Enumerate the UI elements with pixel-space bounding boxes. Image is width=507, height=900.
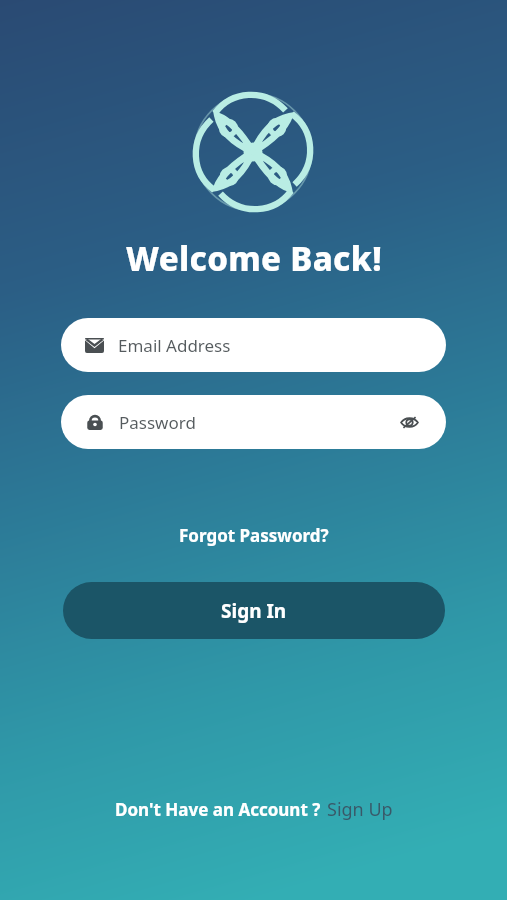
staticText: Forgot Password? bbox=[179, 524, 329, 547]
button[interactable]: Password bbox=[61, 395, 446, 449]
staticText: Email Address bbox=[118, 334, 231, 357]
staticText: Sign Up bbox=[327, 797, 393, 822]
button[interactable]: Forgot Password? bbox=[171, 520, 337, 551]
staticText: Sign In bbox=[221, 598, 287, 624]
staticText: Welcome Back! bbox=[126, 236, 382, 281]
button[interactable]: Sign Up bbox=[327, 797, 393, 822]
staticText: Password bbox=[119, 411, 394, 434]
staticText: Don't Have an Account ? bbox=[115, 798, 321, 821]
button[interactable]: Sign In bbox=[63, 582, 445, 639]
button[interactable]: Show password bbox=[394, 407, 424, 437]
button[interactable]: Email Address bbox=[61, 318, 446, 372]
